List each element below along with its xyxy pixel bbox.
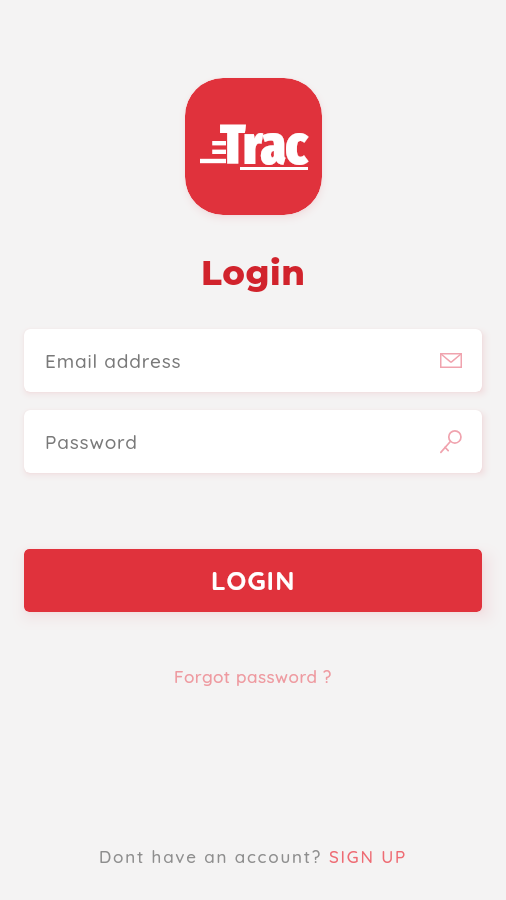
- other: Email: [440, 353, 462, 368]
- button[interactable]: Password: [24, 410, 482, 473]
- staticText: SIGN UP: [329, 846, 407, 867]
- staticText: Login: [201, 252, 306, 293]
- staticText: LOGIN: [211, 564, 296, 597]
- staticText: Trac: [220, 113, 308, 179]
- staticText: Dont have an account?: [99, 846, 329, 867]
- button[interactable]: Forgot password ?: [164, 661, 342, 692]
- staticText: Forgot password ?: [174, 666, 332, 687]
- staticText: Email address: [45, 349, 182, 373]
- other: Password: [439, 430, 462, 454]
- button[interactable]: SIGN UP: [329, 846, 407, 867]
- button[interactable]: Email address: [24, 329, 482, 392]
- button[interactable]: LOGIN: [24, 549, 482, 612]
- staticText: Password: [45, 430, 138, 454]
